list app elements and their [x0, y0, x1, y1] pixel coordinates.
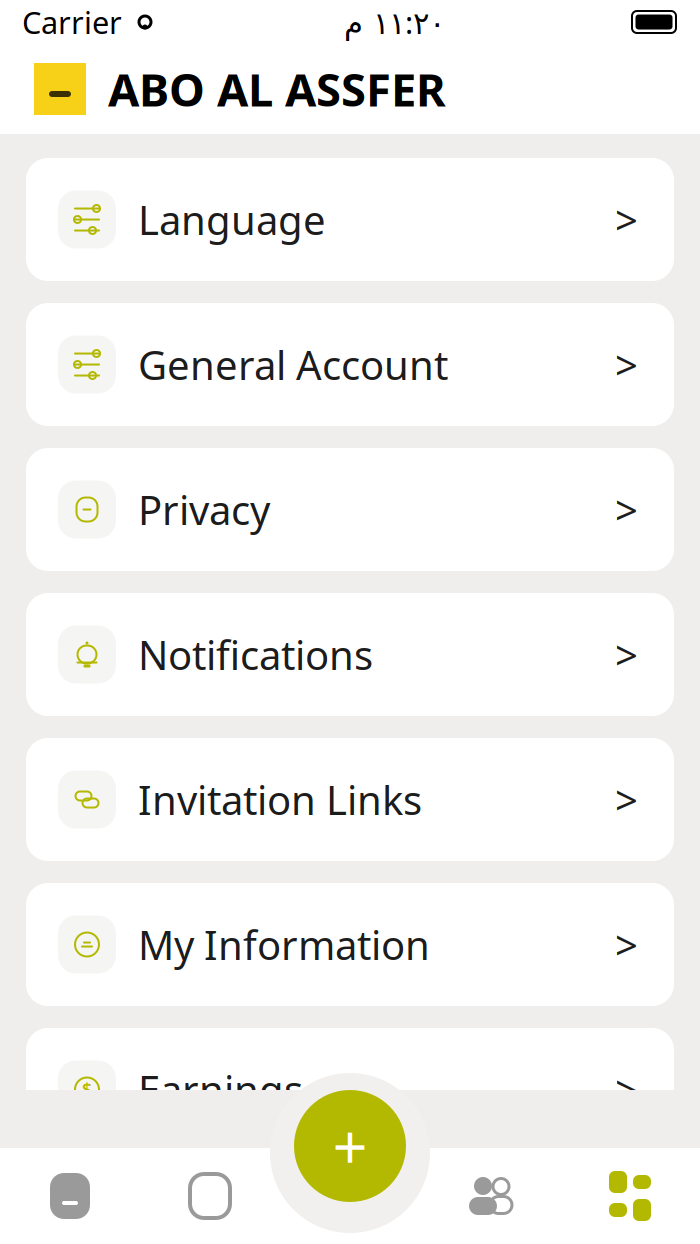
button[interactable]: Add: [294, 1090, 406, 1202]
button[interactable]: Contacts: [420, 1148, 560, 1244]
button[interactable]: Support: [26, 1173, 674, 1244]
button[interactable]: My Information: [26, 883, 674, 1006]
staticText: >: [615, 1063, 638, 1116]
button[interactable]: Media: [140, 1148, 280, 1244]
staticText: Privacy: [138, 483, 270, 536]
staticText: ABO AL ASSFER: [108, 59, 446, 119]
staticText: Invitation Links: [138, 773, 422, 826]
staticText: ١١:٢٠ م: [343, 2, 444, 42]
button[interactable]: Notifications: [26, 593, 674, 716]
staticText: >: [615, 628, 638, 681]
button[interactable]: Language: [26, 158, 674, 281]
button[interactable]: General Account: [26, 303, 674, 426]
staticText: General Account: [138, 338, 448, 391]
staticText: Support: [138, 1208, 290, 1244]
staticText: Carrier: [22, 2, 122, 42]
button[interactable]: Invitation Links: [26, 738, 674, 861]
staticText: >: [615, 193, 638, 246]
staticText: >: [615, 1208, 638, 1244]
staticText: Notifications: [138, 628, 373, 681]
button[interactable]: $: [26, 1028, 674, 1151]
staticText: >: [615, 773, 638, 826]
staticText: Earnings: [138, 1063, 303, 1116]
button[interactable]: Home: [0, 1148, 140, 1244]
button[interactable]: Privacy: [26, 448, 674, 571]
staticText: >: [615, 483, 638, 536]
staticText: >: [615, 338, 638, 391]
staticText: +: [332, 1105, 367, 1187]
staticText: >: [615, 918, 638, 971]
staticText: Language: [138, 193, 326, 246]
staticText: My Information: [138, 918, 430, 971]
staticText: $: [82, 1078, 92, 1101]
button[interactable]: More: [560, 1148, 700, 1244]
